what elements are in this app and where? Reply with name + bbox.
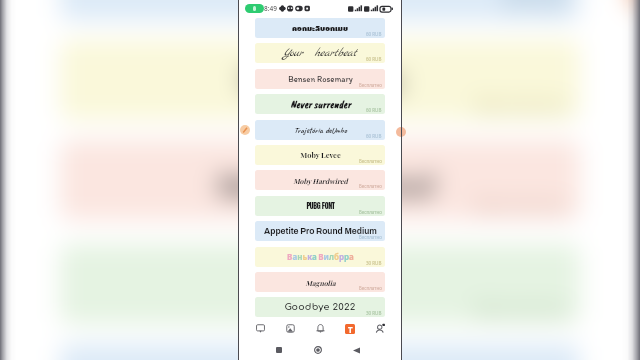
button[interactable]: Recents (272, 343, 286, 357)
button[interactable]: Appetite Pro Round Medium (255, 221, 385, 241)
staticText: Бесплатно (359, 158, 382, 164)
staticText: 30 RUB (366, 260, 382, 266)
button[interactable]: More (396, 127, 406, 137)
staticText: 60 RUB (366, 107, 382, 113)
button[interactable]: Back (349, 343, 363, 357)
staticText: Бесплатно (359, 82, 382, 88)
staticText: Goodbye 2022 (284, 302, 356, 313)
button[interactable]: Goodbye 2022 (255, 297, 385, 317)
staticText: PUBG FONT (264, 260, 380, 308)
staticText: 60 RUB (366, 31, 382, 37)
staticText: Appetite Pro Round Medium (264, 227, 377, 236)
button[interactable]: Moby Levee (60, 40, 580, 120)
button[interactable]: Moby Levee (255, 145, 385, 165)
staticText: PUBG FONT (306, 200, 335, 212)
button[interactable]: Photos (275, 318, 305, 339)
staticText: Trajetória deUmbo (216, 0, 428, 4)
button[interactable]: Magnolia (255, 272, 385, 292)
staticText: 60 RUB (504, 0, 568, 16)
button[interactable]: Notifications (305, 318, 335, 339)
staticText: Bensen Rosemary (288, 74, 353, 84)
staticText: Ванька Вилбрра (287, 251, 354, 264)
staticText: Your heartbeat (283, 46, 357, 61)
staticText: Бесплатно (476, 92, 568, 116)
button[interactable]: PUBG FONT (60, 244, 580, 324)
staticText: T (348, 324, 353, 334)
staticText: 30 RUB (366, 310, 382, 316)
button[interactable]: Profile (365, 318, 395, 339)
staticText: Never surrender (290, 98, 351, 111)
button[interactable]: Trajetória deUmbo (255, 120, 385, 140)
button[interactable]: Edit (240, 125, 250, 135)
button[interactable]: คอกมะลิบอกเมย (255, 18, 385, 38)
staticText: Бесплатно (359, 234, 382, 240)
staticText: Magnolia (305, 278, 336, 287)
button[interactable]: Bensen Rosemary (255, 69, 385, 89)
staticText: 8:49 (264, 4, 277, 13)
button[interactable]: Moby Hardwired (255, 170, 385, 190)
button[interactable]: Trajetória deUmbo (60, 0, 580, 20)
staticText: Moby Levee (300, 150, 341, 160)
button[interactable]: Fonts (335, 318, 365, 339)
button[interactable]: Moby Hardwired (60, 140, 580, 220)
staticText: Бесплатно (359, 183, 382, 189)
button[interactable]: Ванька Вилбрра (255, 247, 385, 267)
button[interactable]: Messages (245, 318, 275, 339)
staticText: Бесплатно (476, 192, 568, 216)
button[interactable]: Appetite Pro Round Medium (60, 344, 580, 360)
staticText: Бесплатно (359, 285, 382, 291)
staticText: 60 RUB (366, 56, 382, 62)
staticText: Бесплатно (476, 296, 568, 320)
button[interactable]: More (624, 0, 640, 8)
staticText: 60 RUB (366, 133, 382, 139)
staticText: Moby Hardwired (212, 164, 432, 200)
button[interactable]: PUBG FONT (255, 196, 385, 216)
staticText: Trajetória deUmbo (294, 125, 347, 136)
staticText: คอกมะลิบอกเมย (292, 22, 348, 35)
staticText: Moby Levee (240, 60, 404, 100)
staticText: Бесплатно (359, 209, 382, 215)
button[interactable]: Your heartbeat (255, 43, 385, 63)
button[interactable]: Home (311, 343, 325, 357)
button[interactable]: Never surrender (255, 94, 385, 114)
staticText: Moby Hardwired (293, 176, 348, 185)
